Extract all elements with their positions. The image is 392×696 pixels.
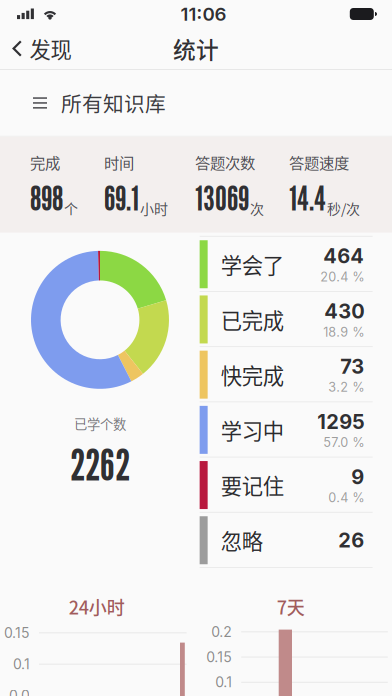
staticText: 0.15 <box>4 624 30 641</box>
staticText: 1295 <box>317 410 364 434</box>
staticText: 已完成 <box>221 304 284 335</box>
staticText: 57.0 % <box>323 435 364 450</box>
staticText: 个 <box>64 198 78 218</box>
staticText: 464 <box>323 244 364 268</box>
button[interactable]: 已完成 <box>200 292 373 347</box>
staticText: 9 <box>351 465 364 489</box>
staticText: 统计 <box>173 32 219 65</box>
staticText: 答题速度 <box>289 151 349 173</box>
staticText: 所有知识库 <box>61 88 166 118</box>
staticText: 忽略 <box>221 525 263 556</box>
staticText: 11:06 <box>180 3 226 25</box>
staticText: 0.1 <box>215 674 232 691</box>
staticText: 答题次数 <box>195 151 255 173</box>
staticText: 秒/次 <box>327 198 360 218</box>
staticText: 0.2 <box>211 623 232 640</box>
staticText: 13069 <box>195 178 249 218</box>
staticText: 2262 <box>70 439 130 490</box>
staticText: 20.4 % <box>320 269 364 284</box>
staticText: 7天 <box>277 594 305 620</box>
staticText: 69.1 <box>104 178 139 218</box>
staticText: 次 <box>250 198 264 218</box>
button[interactable]: 发现 <box>0 28 96 69</box>
staticText: 3.2 % <box>328 380 364 395</box>
staticText: 要记住 <box>221 470 284 500</box>
staticText: 24小时 <box>69 594 125 620</box>
staticText: 快完成 <box>221 359 284 390</box>
staticText: 小时 <box>140 198 168 218</box>
button[interactable]: 要记住 <box>200 457 373 513</box>
staticText: 0.1 <box>13 656 30 673</box>
button[interactable]: 学会了 <box>200 237 373 292</box>
staticText: 430 <box>324 299 364 323</box>
staticText: 0.4 % <box>328 490 364 505</box>
staticText: 学习中 <box>221 414 284 445</box>
staticText: 26 <box>338 528 364 552</box>
button[interactable]: 忽略 <box>200 513 373 568</box>
button[interactable]: 学习中 <box>200 402 373 457</box>
staticText: 完成 <box>30 151 60 173</box>
staticText: 0.15 <box>206 649 232 665</box>
staticText: 发现 <box>29 33 71 64</box>
staticText: 时间 <box>104 151 134 173</box>
staticText: 学会了 <box>221 249 284 280</box>
staticText: 0.05 <box>9 687 30 696</box>
staticText: 14.4 <box>289 178 326 218</box>
staticText: 898 <box>30 178 63 218</box>
button[interactable]: 快完成 <box>200 347 373 402</box>
staticText: 18.9 % <box>323 324 364 340</box>
staticText: 已学个数 <box>74 414 126 433</box>
button[interactable]: 所有知识库 <box>0 70 392 136</box>
staticText: 73 <box>340 354 364 379</box>
